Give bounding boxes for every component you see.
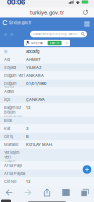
staticText: Doğum Tarihi — [4, 81, 17, 91]
staticText: ÇANKAYA — [26, 97, 45, 102]
button[interactable]: Bookmarks — [58, 186, 74, 198]
staticText: Adres — [4, 89, 14, 94]
staticText: Giriş Yap — [31, 41, 43, 45]
staticText: Yerleşim Yeri Adresi — [4, 150, 20, 165]
staticText: B — [26, 134, 29, 139]
staticText: Adı — [4, 57, 10, 62]
staticText: Soyadı — [4, 65, 16, 70]
staticText: 12 — [26, 179, 30, 184]
button[interactable]: turkiye.gov.tr — [0, 7, 94, 17]
button[interactable]: Menu — [83, 20, 91, 28]
button[interactable]: Forward — [20, 186, 36, 198]
button[interactable]: Tabs — [77, 186, 93, 198]
staticText: Giriş — [4, 134, 13, 139]
staticText: türkiye.gov.tr — [9, 20, 32, 25]
staticText: Doğum Yeri — [4, 73, 25, 78]
staticText: 3 — [26, 126, 28, 131]
staticText: KIZILAY MAH. — [26, 142, 53, 147]
button[interactable]: Reload — [81, 7, 90, 17]
button[interactable]: Share — [39, 186, 55, 198]
staticText: Kayıt Ol — [50, 41, 60, 45]
staticText: Mahalle — [4, 142, 18, 147]
button[interactable]: Aramak istediğiniz içeriği yazınız — [30, 31, 87, 37]
staticText: Kat — [4, 126, 10, 131]
staticText: Cilt No — [4, 179, 16, 184]
staticText: İlçe — [4, 97, 10, 102]
staticText: Bağımsız Bölüm Numarası — [4, 105, 22, 120]
staticText: Blok — [4, 118, 12, 123]
button[interactable]: Back — [1, 186, 17, 198]
staticText: ANKARA — [26, 73, 44, 78]
button[interactable]: Giriş Yap — [24, 40, 70, 46]
staticText: Aramak istediğiniz içeriği yazınız — [32, 32, 76, 36]
button[interactable]: Add — [82, 164, 92, 174]
staticText: 01/01/1990 — [26, 81, 47, 86]
staticText: 00:06 — [7, 0, 25, 6]
staticText: turkiye.gov.tr — [30, 9, 64, 16]
staticText: Arsa Payı — [4, 163, 22, 168]
staticText: Arsa Payda — [4, 171, 25, 176]
staticText: AHMET — [26, 57, 41, 62]
staticText: 12 — [26, 105, 30, 110]
staticText: YILMAZ — [26, 65, 42, 70]
staticText: abcdefg — [26, 49, 39, 54]
